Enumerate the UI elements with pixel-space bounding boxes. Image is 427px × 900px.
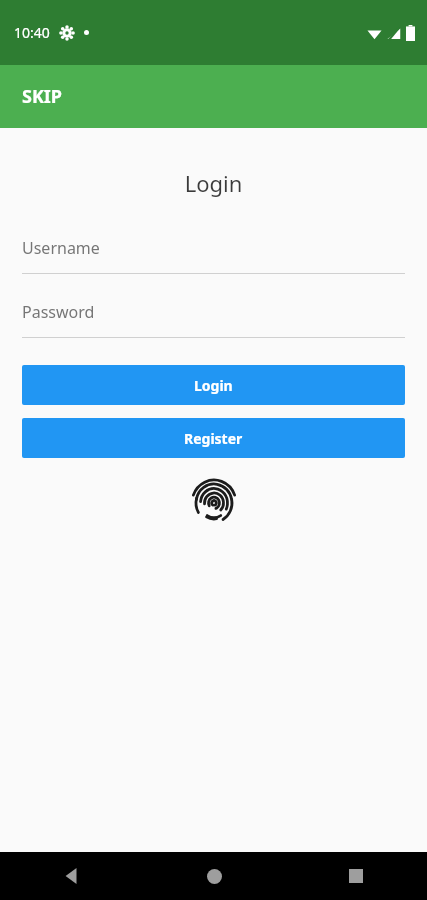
button[interactable]: SKIP <box>0 70 85 123</box>
button[interactable]: Home <box>143 852 285 900</box>
button[interactable]: Back <box>0 852 143 900</box>
button[interactable]: Register <box>22 418 405 458</box>
button[interactable]: Username <box>22 232 405 274</box>
staticText: Login <box>194 376 233 395</box>
staticText: Register <box>184 429 243 448</box>
staticText: Username <box>22 237 100 259</box>
staticText: Login <box>0 168 427 198</box>
staticText: SKIP <box>22 84 63 109</box>
staticText: 10:40 <box>14 23 50 42</box>
button[interactable]: Login <box>22 365 405 405</box>
staticText: Password <box>22 301 95 323</box>
button[interactable]: Fingerprint login <box>186 472 242 528</box>
button[interactable]: Recent apps <box>285 852 427 900</box>
button[interactable]: Password <box>22 296 405 338</box>
